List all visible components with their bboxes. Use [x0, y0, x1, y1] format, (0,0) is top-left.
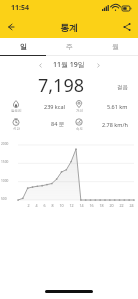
- staticText: 8: [51, 203, 54, 208]
- staticText: 4: [35, 203, 38, 208]
- staticText: 11월 19일: [53, 60, 85, 70]
- staticText: 16: [89, 203, 94, 208]
- staticText: 2000: [1, 142, 9, 146]
- staticText: 239 kcal: [44, 103, 65, 110]
- staticText: 2: [27, 203, 30, 208]
- staticText: 걸음: [117, 84, 128, 91]
- staticText: 속도: [76, 127, 83, 131]
- staticText: 6: [43, 203, 46, 208]
- staticText: 11:54: [11, 3, 29, 13]
- staticText: 12: [69, 203, 74, 208]
- staticText: 22: [119, 203, 124, 208]
- staticText: 18: [99, 203, 104, 208]
- button[interactable]: Back: [0, 16, 22, 38]
- button[interactable]: 주: [46, 38, 92, 55]
- staticText: 7,198: [38, 73, 85, 97]
- staticText: 시간: [13, 127, 20, 131]
- staticText: 14: [79, 203, 84, 208]
- staticText: 거리: [76, 109, 83, 113]
- staticText: 칼로리: [11, 109, 22, 113]
- staticText: 1500: [1, 160, 9, 164]
- button[interactable]: Next day: [91, 58, 105, 72]
- staticText: 500: [1, 197, 7, 201]
- button[interactable]: 거리: [69, 97, 132, 115]
- staticText: 24: [129, 203, 134, 208]
- button[interactable]: 일: [0, 38, 46, 55]
- button[interactable]: 시간: [6, 115, 69, 133]
- button[interactable]: 월: [92, 38, 138, 55]
- staticText: 통계: [60, 22, 78, 33]
- staticText: 주: [66, 42, 73, 51]
- staticText: 5.61 km: [107, 103, 128, 110]
- staticText: 월: [112, 42, 119, 51]
- button[interactable]: 칼로리: [6, 97, 69, 115]
- staticText: 2.78 km/h: [102, 121, 128, 128]
- staticText: 10: [59, 203, 64, 208]
- staticText: 일: [20, 42, 27, 51]
- button[interactable]: Share: [116, 16, 138, 38]
- staticText: 84 분: [51, 120, 65, 128]
- staticText: 20: [109, 203, 114, 208]
- staticText: 1000: [1, 179, 9, 183]
- button[interactable]: 속도: [69, 115, 132, 133]
- button[interactable]: Previous day: [33, 58, 47, 72]
